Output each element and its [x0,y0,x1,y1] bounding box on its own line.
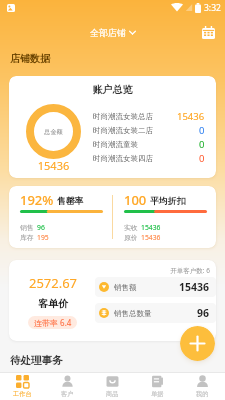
staticText: 100 [124,191,147,209]
staticText: 店铺数据 [10,52,50,65]
staticText: 15436 [141,233,161,242]
staticText: 96 [197,306,210,320]
staticText: 开单客户数: 6 [89,266,210,275]
staticText: 0 [199,138,205,151]
staticText: 单据 [151,390,164,398]
staticText: 商品 [106,390,119,398]
button[interactable]: Calendar [198,22,218,42]
button[interactable]: 商品 [90,373,135,400]
button[interactable]: 工作台 [0,373,45,400]
staticText: 时尚潮流童装 [93,140,138,149]
staticText: 客户 [61,390,74,398]
staticText: 待处理事务 [10,354,63,367]
staticText: 销售额 [114,283,137,292]
staticText: 账户总览 [9,83,216,96]
staticText: 时尚潮流女装总店 [93,112,153,121]
button[interactable]: 账户总览 [9,76,216,178]
staticText: 15436 [26,158,81,173]
button[interactable]: 单据 [135,373,180,400]
button[interactable]: 2572.67 [9,260,216,341]
staticText: 库存 [20,233,34,242]
staticText: 原价 [124,233,138,242]
button[interactable]: 全部店铺 [90,27,136,38]
staticText: 销售总数量 [114,309,152,318]
staticText: 工作台 [13,390,32,398]
staticText: 0 [199,152,205,165]
button[interactable]: Add [180,326,215,361]
staticText: 我的 [196,390,209,398]
staticText: 全部店铺 [90,27,126,38]
staticText: 15436 [177,110,205,123]
staticText: 0 [199,124,205,137]
staticText: 平均折扣 [150,196,186,207]
staticText: 销售 [20,223,34,232]
button[interactable]: 我的 [180,373,225,400]
staticText: 时尚潮流女装二店 [93,126,153,135]
staticText: 195 [37,233,49,242]
button[interactable]: 100 [113,186,216,248]
staticText: 时尚潮流女装四店 [93,154,153,163]
staticText: 15436 [179,280,210,294]
staticText: 总金额 [44,128,63,136]
staticText: 3:32 [204,2,221,14]
staticText: 售罄率 [57,196,84,207]
button[interactable]: 192% [9,186,112,248]
staticText: 96 [37,223,45,232]
staticText: 连带率 6.4 [34,317,72,328]
staticText: 15436 [141,223,161,232]
staticText: 2572.67 [13,274,93,292]
staticText: 实收 [124,223,138,232]
staticText: 客单价 [13,297,93,310]
staticText: 192% [20,191,54,209]
button[interactable]: 客户 [45,373,90,400]
